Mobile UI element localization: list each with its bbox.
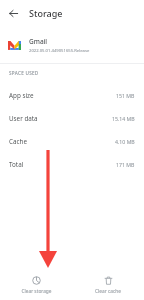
other: Clear cache <box>104 276 113 285</box>
staticText: 2022.05.01.449051655.Release <box>29 48 90 54</box>
staticText: Storage <box>29 7 63 19</box>
staticText: Gmail <box>29 37 48 46</box>
staticText: 171 MB <box>116 161 135 168</box>
staticText: Cache <box>9 137 27 146</box>
staticText: Clear cache <box>95 288 121 295</box>
button[interactable]: Gmail <box>0 32 144 58</box>
staticText: 4.10 MB <box>115 138 135 145</box>
button[interactable]: Back <box>5 5 21 21</box>
staticText: App size <box>9 91 34 100</box>
button[interactable]: Clear cache <box>72 272 144 298</box>
button[interactable]: App size <box>0 84 144 107</box>
button[interactable]: Total <box>0 153 144 176</box>
button[interactable]: Cache <box>0 130 144 153</box>
staticText: 151 MB <box>116 92 135 99</box>
staticText: 15.14 MB <box>112 115 135 122</box>
button[interactable]: User data <box>0 107 144 130</box>
staticText: User data <box>9 114 38 123</box>
other: Clear storage <box>32 276 41 285</box>
button[interactable]: Clear storage <box>0 272 72 298</box>
staticText: SPACE USED <box>9 70 39 76</box>
staticText: Total <box>9 160 24 169</box>
staticText: Clear storage <box>21 288 52 295</box>
